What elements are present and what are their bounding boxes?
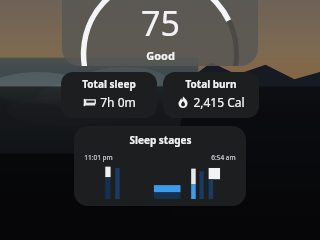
button[interactable]: Total burn: [163, 72, 259, 118]
staticText: 6:54 am: [211, 153, 236, 162]
staticText: Good: [146, 48, 175, 63]
staticText: Total sleep: [82, 77, 136, 91]
staticText: 2,415 Cal: [193, 94, 245, 110]
staticText: 7h 0m: [100, 94, 136, 110]
button[interactable]: Total sleep: [61, 72, 157, 118]
staticText: Sleep stages: [129, 133, 192, 147]
staticText: Total burn: [185, 77, 237, 91]
staticText: 75: [141, 0, 180, 46]
other: Calories burned: [177, 96, 189, 108]
button[interactable]: Sleep stages: [74, 126, 246, 206]
other: Sleep: [83, 96, 96, 109]
staticText: 11:01 pm: [84, 153, 113, 162]
button[interactable]: 75: [62, 0, 258, 66]
